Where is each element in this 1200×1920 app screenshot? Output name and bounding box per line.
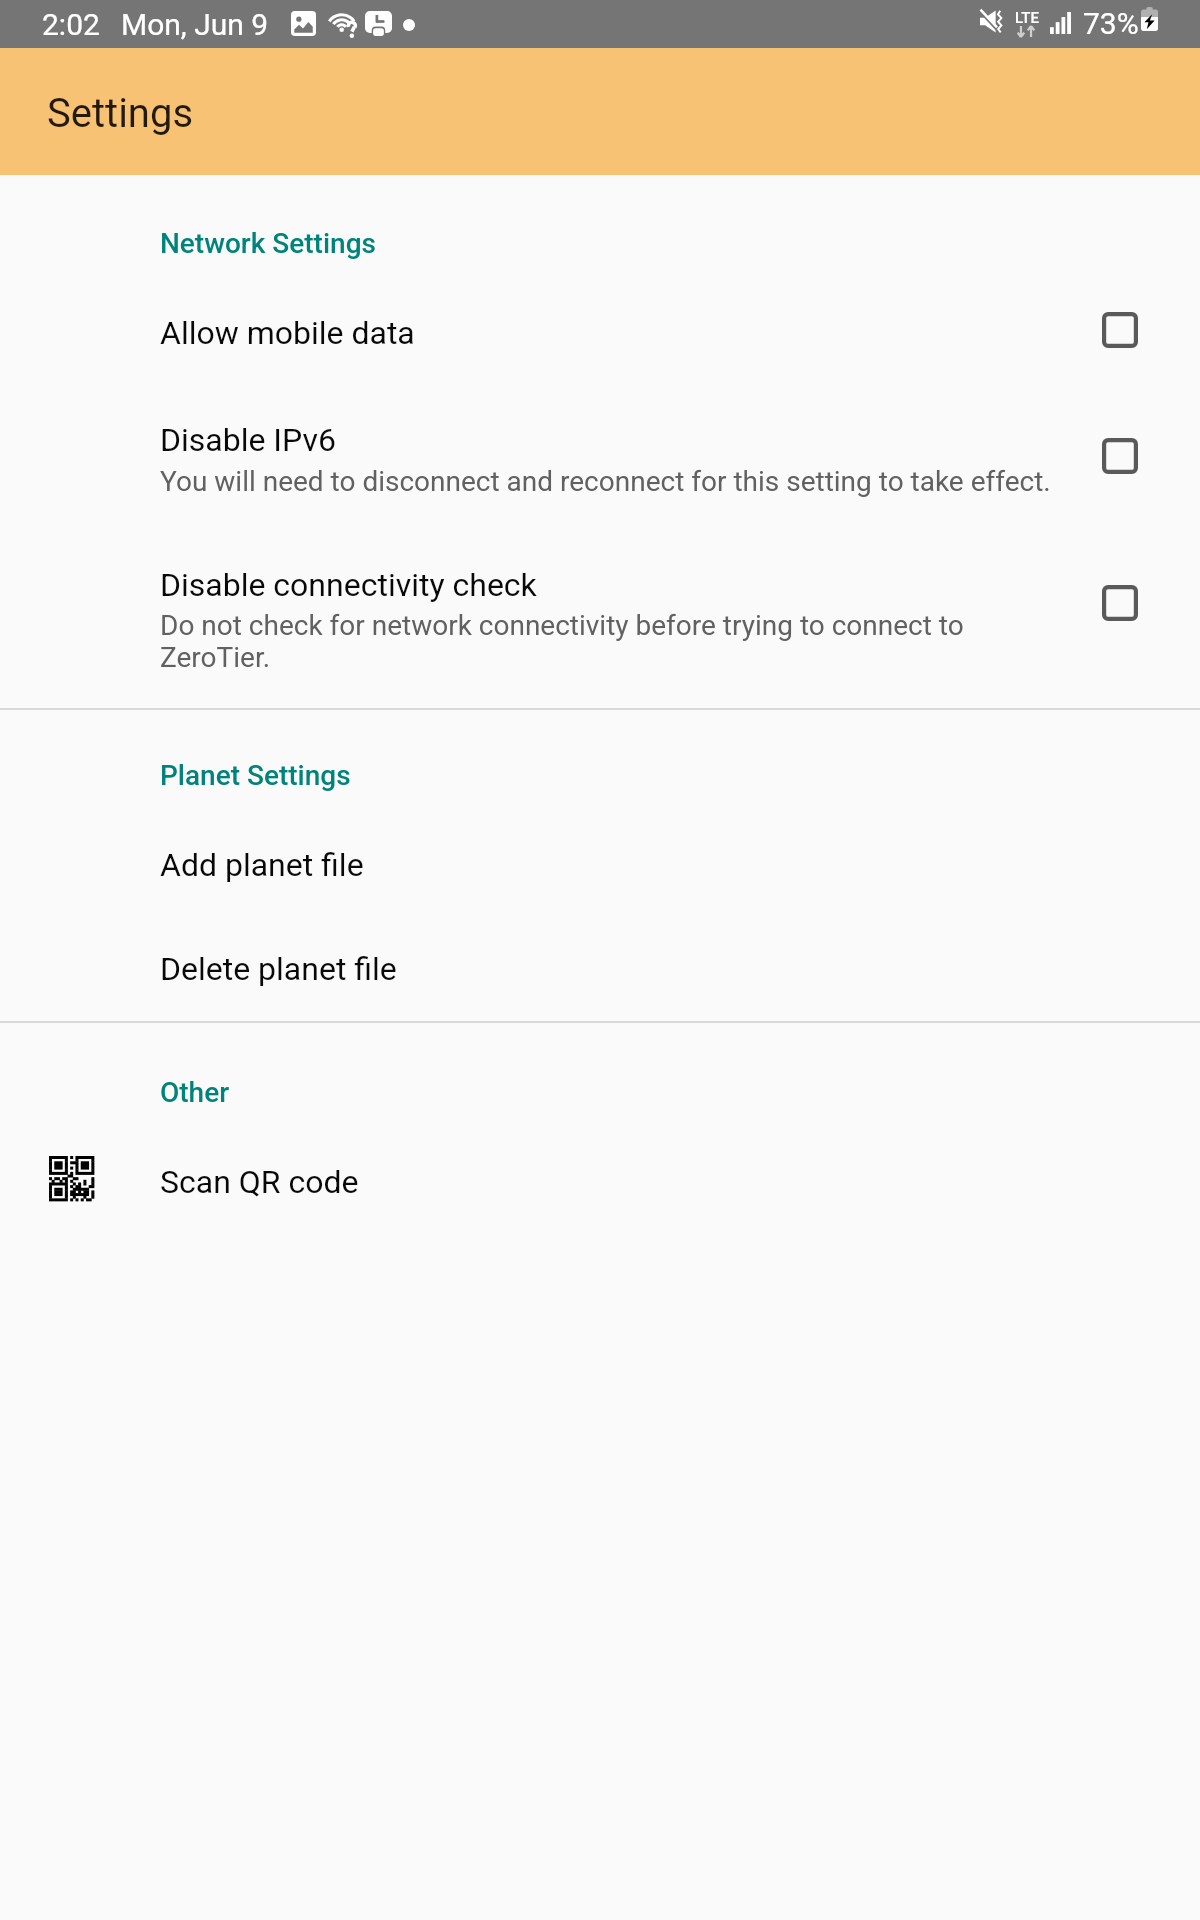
staticText: 73% [1083,6,1139,41]
button[interactable]: Toggle setting [1102,585,1138,621]
staticText: Do not check for network connectivity be… [160,609,964,642]
staticText: Allow mobile data [160,314,415,352]
button[interactable]: Disable connectivity check [0,540,1200,695]
other: Scan QR code [49,1156,94,1201]
button[interactable]: Allow mobile data [0,288,1200,372]
other: Screenshot [291,11,316,36]
button[interactable]: Disable IPv6 [0,395,1200,513]
button[interactable]: Scan QR code [0,1140,1200,1232]
other: Signal strength [1050,12,1071,34]
staticText: Planet Settings [160,759,351,792]
staticText: ZeroTier. [160,641,271,674]
button[interactable]: Toggle setting [1102,438,1138,474]
staticText: Mon, Jun 9 [121,7,269,42]
button[interactable]: Delete planet file [0,928,1200,1020]
button[interactable]: Toggle setting [1102,312,1138,348]
staticText: Network Settings [160,227,376,260]
staticText: Settings [47,90,194,137]
other: Wi-Fi [327,10,357,37]
staticText: Other [160,1076,230,1109]
staticText: Add planet file [160,846,364,884]
staticText: LTE [1015,9,1039,27]
staticText: Scan QR code [160,1163,359,1201]
other: Battery charging 73% [1141,7,1158,31]
other: Silent mode [980,10,1003,33]
staticText: Delete planet file [160,950,397,988]
staticText: You will need to disconnect and reconnec… [160,465,1051,498]
staticText: 2:02 [42,7,100,42]
other: Alarm saved [365,11,392,36]
button[interactable]: Add planet file [0,824,1200,916]
staticText: Disable IPv6 [160,421,336,459]
staticText: Disable connectivity check [160,566,537,604]
